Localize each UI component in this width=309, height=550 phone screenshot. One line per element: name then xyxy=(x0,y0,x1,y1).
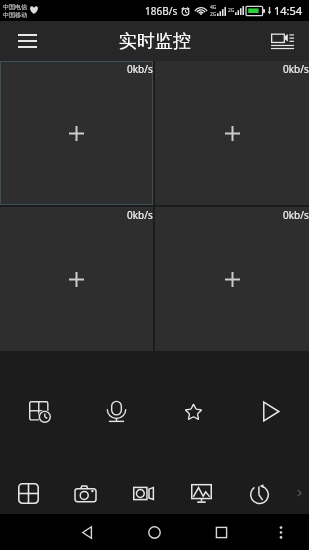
staticText: 0kb/s xyxy=(127,208,153,222)
button[interactable]: Home xyxy=(121,514,188,550)
staticText: 0kb/s xyxy=(283,62,309,76)
button[interactable]: Favorite xyxy=(155,381,232,441)
button[interactable]: Playback xyxy=(0,381,78,441)
staticText: 4G xyxy=(210,4,217,11)
button[interactable]: Menu xyxy=(0,21,54,61)
staticText: 186B/s xyxy=(145,4,178,18)
button[interactable]: Record xyxy=(114,472,172,514)
staticText: 2G xyxy=(210,11,217,18)
staticText: 实时监控 xyxy=(119,30,191,53)
staticText: 0kb/s xyxy=(283,208,309,222)
button[interactable]: 0kb/s xyxy=(0,207,153,351)
button[interactable]: More options xyxy=(253,514,309,550)
button[interactable]: Recents xyxy=(188,514,255,550)
button[interactable]: Split screen xyxy=(0,472,57,514)
button[interactable]: 0kb/s xyxy=(155,61,309,205)
staticText: 中国移动 xyxy=(3,11,27,19)
button[interactable]: 0kb/s xyxy=(155,207,309,351)
staticText: 中国电信 xyxy=(3,3,27,11)
button[interactable]: Microphone xyxy=(78,381,155,441)
button[interactable]: Back xyxy=(54,514,121,550)
button[interactable]: More xyxy=(289,472,309,514)
staticText: 2G xyxy=(228,7,235,14)
button[interactable]: 0kb/s xyxy=(0,61,153,205)
button[interactable]: Image xyxy=(172,472,230,514)
button[interactable]: History xyxy=(230,472,288,514)
button[interactable]: Snapshot xyxy=(57,472,114,514)
button[interactable]: Play xyxy=(232,381,309,441)
button[interactable]: Device list xyxy=(255,21,309,61)
staticText: 0kb/s xyxy=(127,62,153,76)
staticText: 14:54 xyxy=(274,3,303,18)
